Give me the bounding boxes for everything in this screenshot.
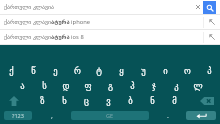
button[interactable]: ტ [88, 63, 110, 78]
staticText: რ [74, 66, 81, 76]
button[interactable]: ჰ [121, 78, 143, 93]
button[interactable]: მ [163, 93, 185, 108]
button[interactable]: ბ [119, 93, 141, 108]
staticText: ო [184, 66, 191, 76]
button[interactable]: ხ [53, 93, 75, 108]
button[interactable]: ა [11, 78, 33, 93]
staticText: ვ [106, 96, 111, 106]
staticText: ი [163, 66, 168, 76]
staticText: . [167, 111, 169, 121]
button[interactable]: Insert suggestion [204, 15, 220, 29]
button[interactable]: ყ [110, 63, 132, 78]
button[interactable]: ლ [187, 78, 209, 93]
staticText: ჯ [152, 81, 156, 91]
button[interactable]: . [149, 108, 186, 123]
staticText: ყ [119, 66, 124, 76]
button[interactable]: Space [71, 111, 149, 120]
button[interactable]: ?123 [4, 111, 32, 120]
button[interactable]: ე [44, 63, 66, 78]
button[interactable]: ო [176, 63, 198, 78]
staticText: GE [106, 112, 114, 119]
button[interactable]: ი [154, 63, 176, 78]
button[interactable]: პ [198, 63, 220, 78]
button[interactable]: წ [22, 63, 44, 78]
staticText: ?123 [12, 112, 24, 119]
button[interactable]: ც [75, 93, 97, 108]
staticText: ქ [9, 66, 14, 76]
button[interactable]: ზ [31, 93, 53, 108]
button[interactable]: Insert suggestion [204, 30, 220, 44]
button[interactable]: ს [33, 78, 55, 93]
button[interactable]: Enter [186, 111, 216, 120]
staticText: ქართული კლავიატურა iphone [4, 18, 91, 26]
button[interactable]: Shift [0, 93, 31, 108]
button[interactable]: უ [132, 63, 154, 78]
staticText: კ [174, 81, 179, 91]
button[interactable]: ქართული კლავიატურა ios 8 [0, 30, 220, 44]
staticText: ქართული კლავია [4, 3, 54, 11]
button[interactable]: გ [99, 78, 121, 93]
button[interactable]: ქართული კლავიატურა iphone [0, 15, 220, 29]
staticText: , [51, 111, 53, 121]
button[interactable]: კ [165, 78, 187, 93]
button[interactable]: ქ [0, 63, 22, 78]
button[interactable]: ფ [77, 78, 99, 93]
button[interactable]: Search [203, 1, 216, 14]
staticText: ბ [128, 96, 133, 106]
staticText: ც [84, 96, 89, 106]
staticText: ზ [40, 96, 45, 106]
button[interactable]: ვ [97, 93, 119, 108]
button[interactable]: Backspace [185, 93, 220, 108]
staticText: მ [172, 96, 177, 106]
staticText: ნ [150, 96, 155, 106]
button[interactable]: დ [55, 78, 77, 93]
staticText: პ [207, 66, 212, 76]
staticText: გ [108, 81, 113, 91]
staticText: ქართული კლავიატურა ios 8 [4, 33, 84, 41]
staticText: ტ [96, 66, 102, 76]
staticText: ს [42, 81, 47, 91]
button[interactable]: რ [66, 63, 88, 78]
staticText: დ [62, 81, 70, 91]
button[interactable]: ქართული კლავია [4, 0, 192, 14]
staticText: ე [53, 66, 58, 76]
staticText: ჰ [130, 81, 135, 91]
button[interactable]: ჯ [143, 78, 165, 93]
staticText: წ [31, 66, 36, 76]
button[interactable]: Clear [192, 0, 203, 14]
staticText: ლ [193, 81, 203, 91]
staticText: ფ [84, 81, 92, 91]
button[interactable]: , [32, 108, 71, 123]
staticText: უ [141, 66, 146, 76]
button[interactable]: ნ [141, 93, 163, 108]
staticText: ა [20, 81, 25, 91]
staticText: ხ [62, 96, 67, 106]
